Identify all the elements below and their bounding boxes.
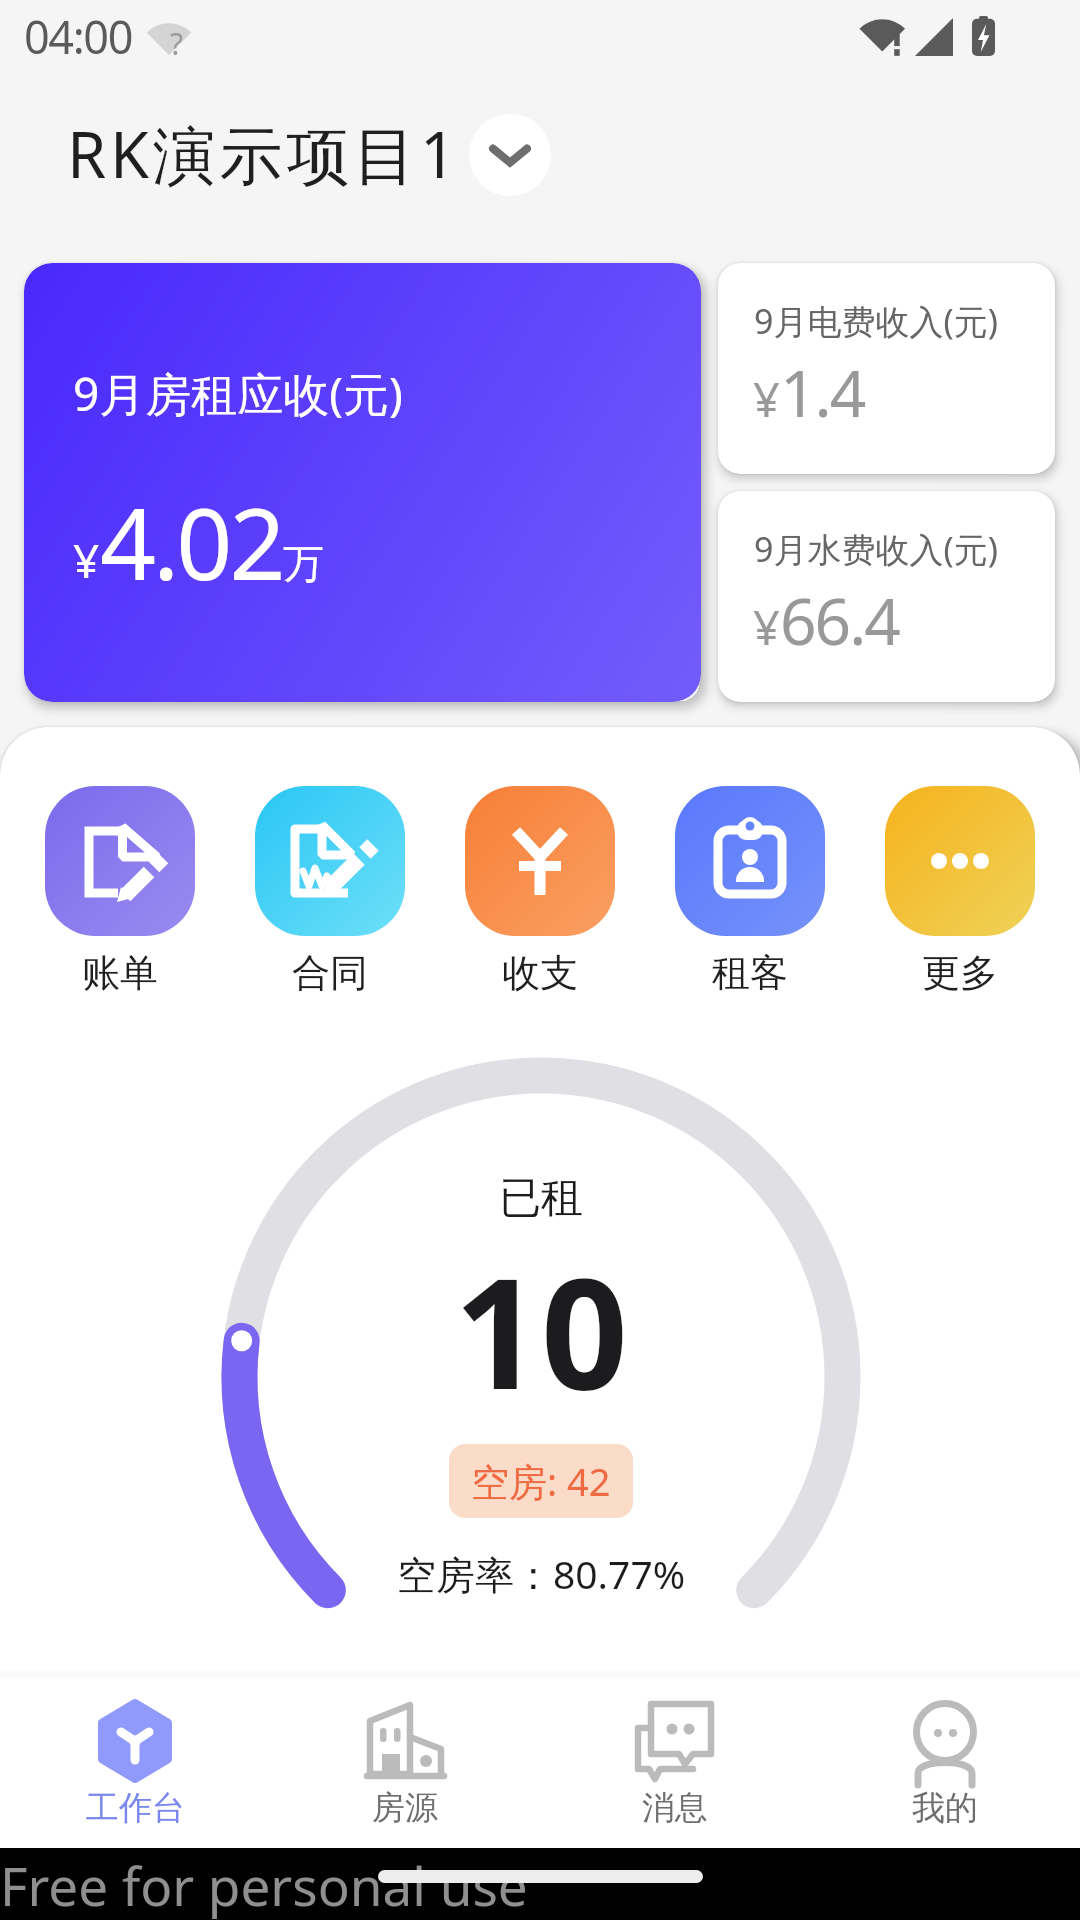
staticText: 更多 xyxy=(922,949,998,997)
button[interactable]: 工作台 xyxy=(0,1678,270,1848)
staticText: 工作台 xyxy=(86,1787,185,1829)
staticText: Free for personal use xyxy=(0,1849,528,1920)
staticText: RK演示项目1 xyxy=(67,111,460,197)
staticText: 1.4 xyxy=(780,349,865,436)
staticText: 房源 xyxy=(372,1787,438,1829)
staticText: ¥ xyxy=(73,529,100,592)
staticText: 66.4 xyxy=(780,577,899,664)
button[interactable]: 账单 xyxy=(45,786,195,997)
button[interactable]: 更多 xyxy=(885,786,1035,997)
staticText: 我的 xyxy=(912,1787,978,1829)
button[interactable]: 房源 xyxy=(270,1678,540,1848)
staticText: 已租 xyxy=(499,1172,583,1225)
staticText: 9月水费收入(元) xyxy=(754,526,998,572)
button[interactable]: Switch project xyxy=(469,114,551,196)
staticText: 4.02 xyxy=(100,475,283,608)
staticText: 账单 xyxy=(82,949,158,997)
button[interactable]: 消息 xyxy=(540,1678,810,1848)
staticText: 空房率：80.77% xyxy=(397,1547,686,1600)
button[interactable]: 收支 xyxy=(465,786,615,997)
staticText: 消息 xyxy=(642,1787,708,1829)
staticText: 9月电费收入(元) xyxy=(754,298,998,344)
staticText: 10 xyxy=(454,1227,628,1434)
staticText: ¥ xyxy=(753,595,780,659)
staticText: 合同 xyxy=(292,949,368,997)
staticText: ? xyxy=(170,23,184,64)
button[interactable]: 9月水费收入(元) xyxy=(718,491,1055,702)
staticText: 9月房租应收(元) xyxy=(73,362,403,425)
staticText: 收支 xyxy=(502,949,578,997)
button[interactable]: 9月房租应收(元) xyxy=(24,263,701,702)
staticText: ¥ xyxy=(753,367,780,431)
button[interactable]: 9月电费收入(元) xyxy=(718,263,1055,474)
staticText: 万 xyxy=(283,539,324,591)
button[interactable]: 合同 xyxy=(255,786,405,997)
staticText: 租客 xyxy=(712,949,788,997)
button[interactable]: 租客 xyxy=(675,786,825,997)
staticText: 04:00 xyxy=(24,6,133,67)
staticText: 空房: 42 xyxy=(471,1455,611,1507)
button[interactable]: 我的 xyxy=(810,1678,1080,1848)
